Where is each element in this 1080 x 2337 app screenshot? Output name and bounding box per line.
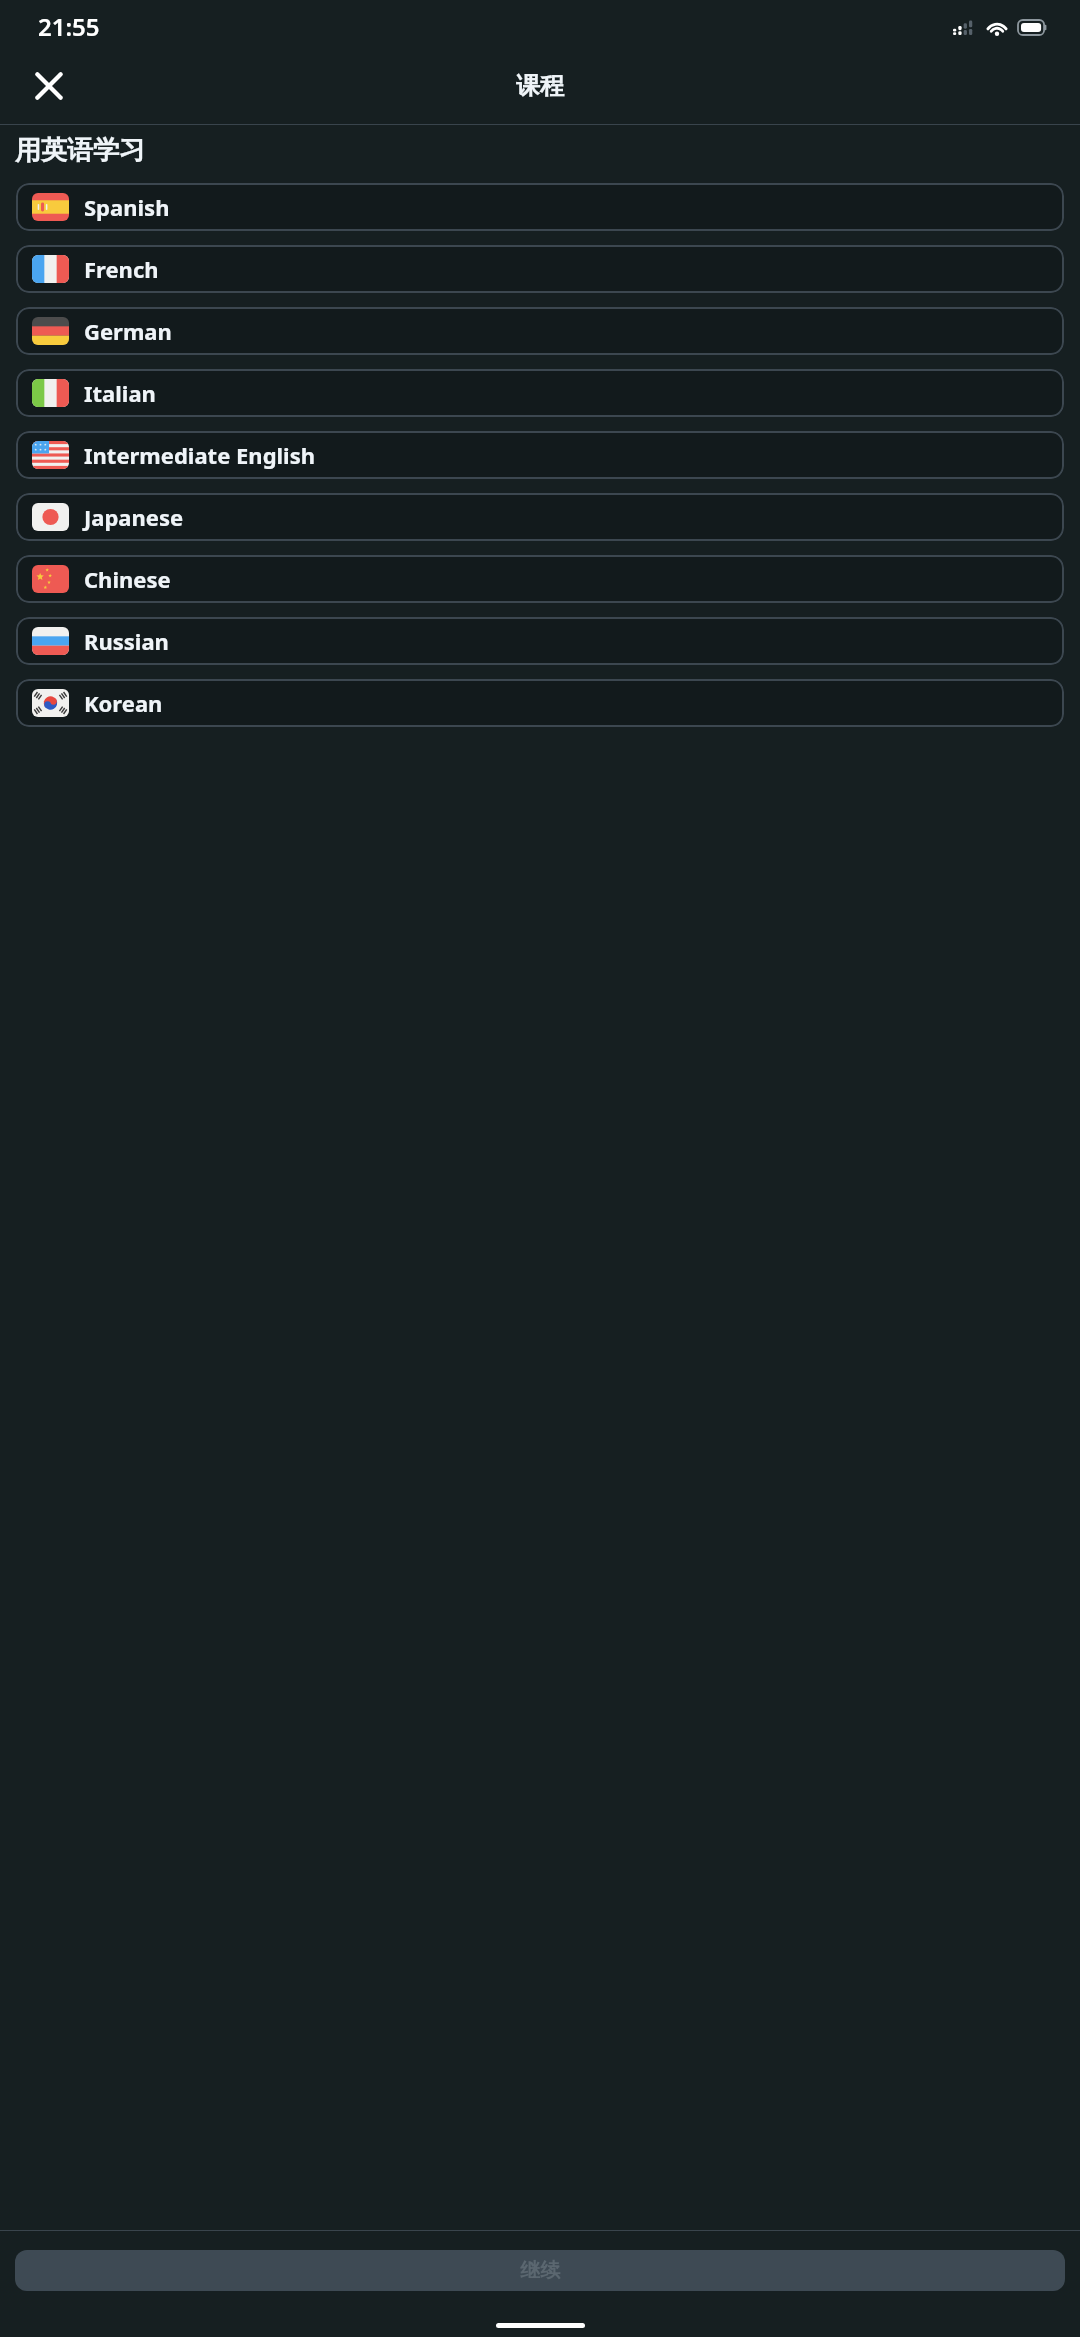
button[interactable]: Korean xyxy=(16,679,1064,727)
staticText: Intermediate English xyxy=(84,440,316,470)
staticText: Spanish xyxy=(84,192,170,222)
button[interactable]: German xyxy=(16,307,1064,355)
button[interactable]: Russian xyxy=(16,617,1064,665)
staticText: 21:55 xyxy=(38,10,100,43)
button[interactable]: Italian xyxy=(16,369,1064,417)
staticText: Japanese xyxy=(84,502,184,532)
staticText: French xyxy=(84,254,159,284)
staticText: 课程 xyxy=(516,71,564,101)
button[interactable]: Spanish xyxy=(16,183,1064,231)
staticText: Italian xyxy=(84,378,156,408)
button[interactable]: 继续 xyxy=(15,2250,1065,2291)
button[interactable]: Close xyxy=(22,59,76,113)
staticText: German xyxy=(84,316,172,346)
button[interactable]: French xyxy=(16,245,1064,293)
button[interactable]: Japanese xyxy=(16,493,1064,541)
staticText: 用英语学习 xyxy=(15,134,145,167)
staticText: 继续 xyxy=(520,2258,560,2283)
button[interactable]: Chinese xyxy=(16,555,1064,603)
staticText: Korean xyxy=(84,688,163,718)
staticText: Chinese xyxy=(84,564,171,594)
button[interactable]: Intermediate English xyxy=(16,431,1064,479)
staticText: Russian xyxy=(84,626,169,656)
